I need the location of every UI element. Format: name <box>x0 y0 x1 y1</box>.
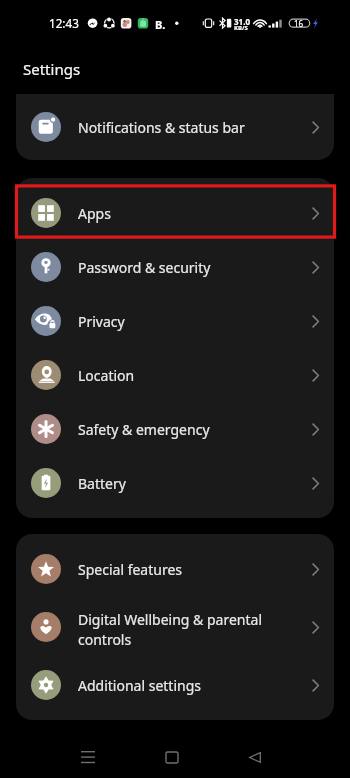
button[interactable]: Safety & emergency <box>16 402 334 456</box>
staticText: Additional settings <box>78 676 312 695</box>
staticText: Digital Wellbeing & parental controls <box>78 610 312 649</box>
button[interactable]: Password & security <box>16 240 334 294</box>
staticText: 12:43 <box>49 15 79 31</box>
staticText: KB/S <box>234 24 248 32</box>
button[interactable]: Apps <box>16 186 334 240</box>
staticText: Safety & emergency <box>78 420 312 439</box>
button[interactable]: Privacy <box>16 294 334 348</box>
button[interactable]: Notifications & status bar <box>16 100 334 154</box>
staticText: Apps <box>78 204 312 223</box>
button[interactable]: Location <box>16 348 334 402</box>
staticText: Special features <box>78 560 312 579</box>
staticText: 31.0 <box>234 16 250 27</box>
button[interactable]: Back <box>235 737 275 777</box>
staticText: Battery <box>78 474 312 493</box>
button[interactable]: Digital Wellbeing & parental controls <box>16 596 334 658</box>
button[interactable]: Recent apps <box>68 737 108 777</box>
staticText: B. <box>155 17 166 32</box>
staticText: Location <box>78 366 312 385</box>
button[interactable]: Special features <box>16 542 334 596</box>
button[interactable]: Home <box>152 737 192 777</box>
staticText: Privacy <box>78 312 312 331</box>
staticText: Settings <box>23 59 81 79</box>
button[interactable]: Additional settings <box>16 658 334 712</box>
button[interactable]: Battery <box>16 456 334 510</box>
staticText: Notifications & status bar <box>78 118 312 137</box>
staticText: Password & security <box>78 258 312 277</box>
staticText: 16 <box>294 18 304 29</box>
